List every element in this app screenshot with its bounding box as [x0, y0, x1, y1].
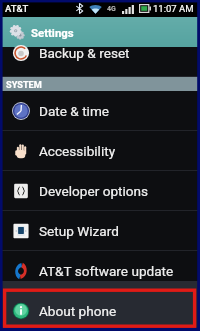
- button[interactable]: Backup & reset: [0, 47, 200, 77]
- staticText: 4G: [107, 5, 116, 13]
- staticText: Date & time: [39, 103, 110, 119]
- button[interactable]: About phone: [0, 291, 200, 331]
- button[interactable]: Setup Wizard: [0, 211, 200, 251]
- staticText: 11:07 AM: [153, 3, 194, 14]
- staticText: SYSTEM: [6, 79, 42, 90]
- button[interactable]: Date & time: [0, 91, 200, 131]
- staticText: AT&T: [5, 3, 29, 14]
- button[interactable]: AT&T software update: [0, 251, 200, 291]
- staticText: Setup Wizard: [39, 223, 119, 239]
- button[interactable]: Settings: [0, 17, 200, 47]
- staticText: Accessibility: [39, 143, 116, 159]
- staticText: Settings: [31, 26, 74, 39]
- button[interactable]: Developer options: [0, 171, 200, 211]
- staticText: Backup & reset: [39, 45, 130, 61]
- staticText: AT&T software update: [39, 263, 174, 279]
- button[interactable]: Accessibility: [0, 131, 200, 171]
- staticText: About phone: [39, 303, 117, 319]
- staticText: Developer options: [39, 183, 149, 199]
